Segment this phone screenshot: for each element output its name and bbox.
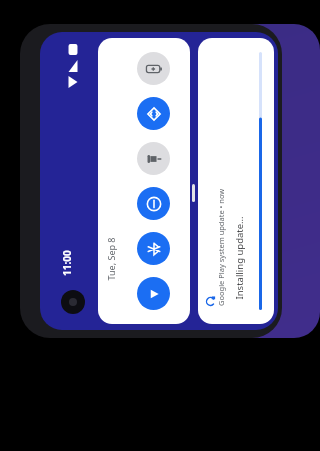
staticText: Installing update… — [232, 215, 245, 299]
button[interactable]: Battery saver — [137, 52, 170, 85]
staticText: Tue, Sep 8 — [104, 237, 116, 280]
button[interactable]: Play media — [137, 277, 170, 310]
staticText: Google Play system update • now — [216, 188, 226, 306]
button[interactable]: Google Play — [198, 38, 274, 324]
staticText: 11:00 — [60, 250, 74, 276]
other: Google Play — [205, 296, 216, 307]
button[interactable]: Do not disturb — [137, 187, 170, 220]
button[interactable]: Bluetooth — [137, 232, 170, 265]
button[interactable]: Flashlight — [137, 142, 170, 175]
button[interactable]: Auto rotate — [137, 97, 170, 130]
